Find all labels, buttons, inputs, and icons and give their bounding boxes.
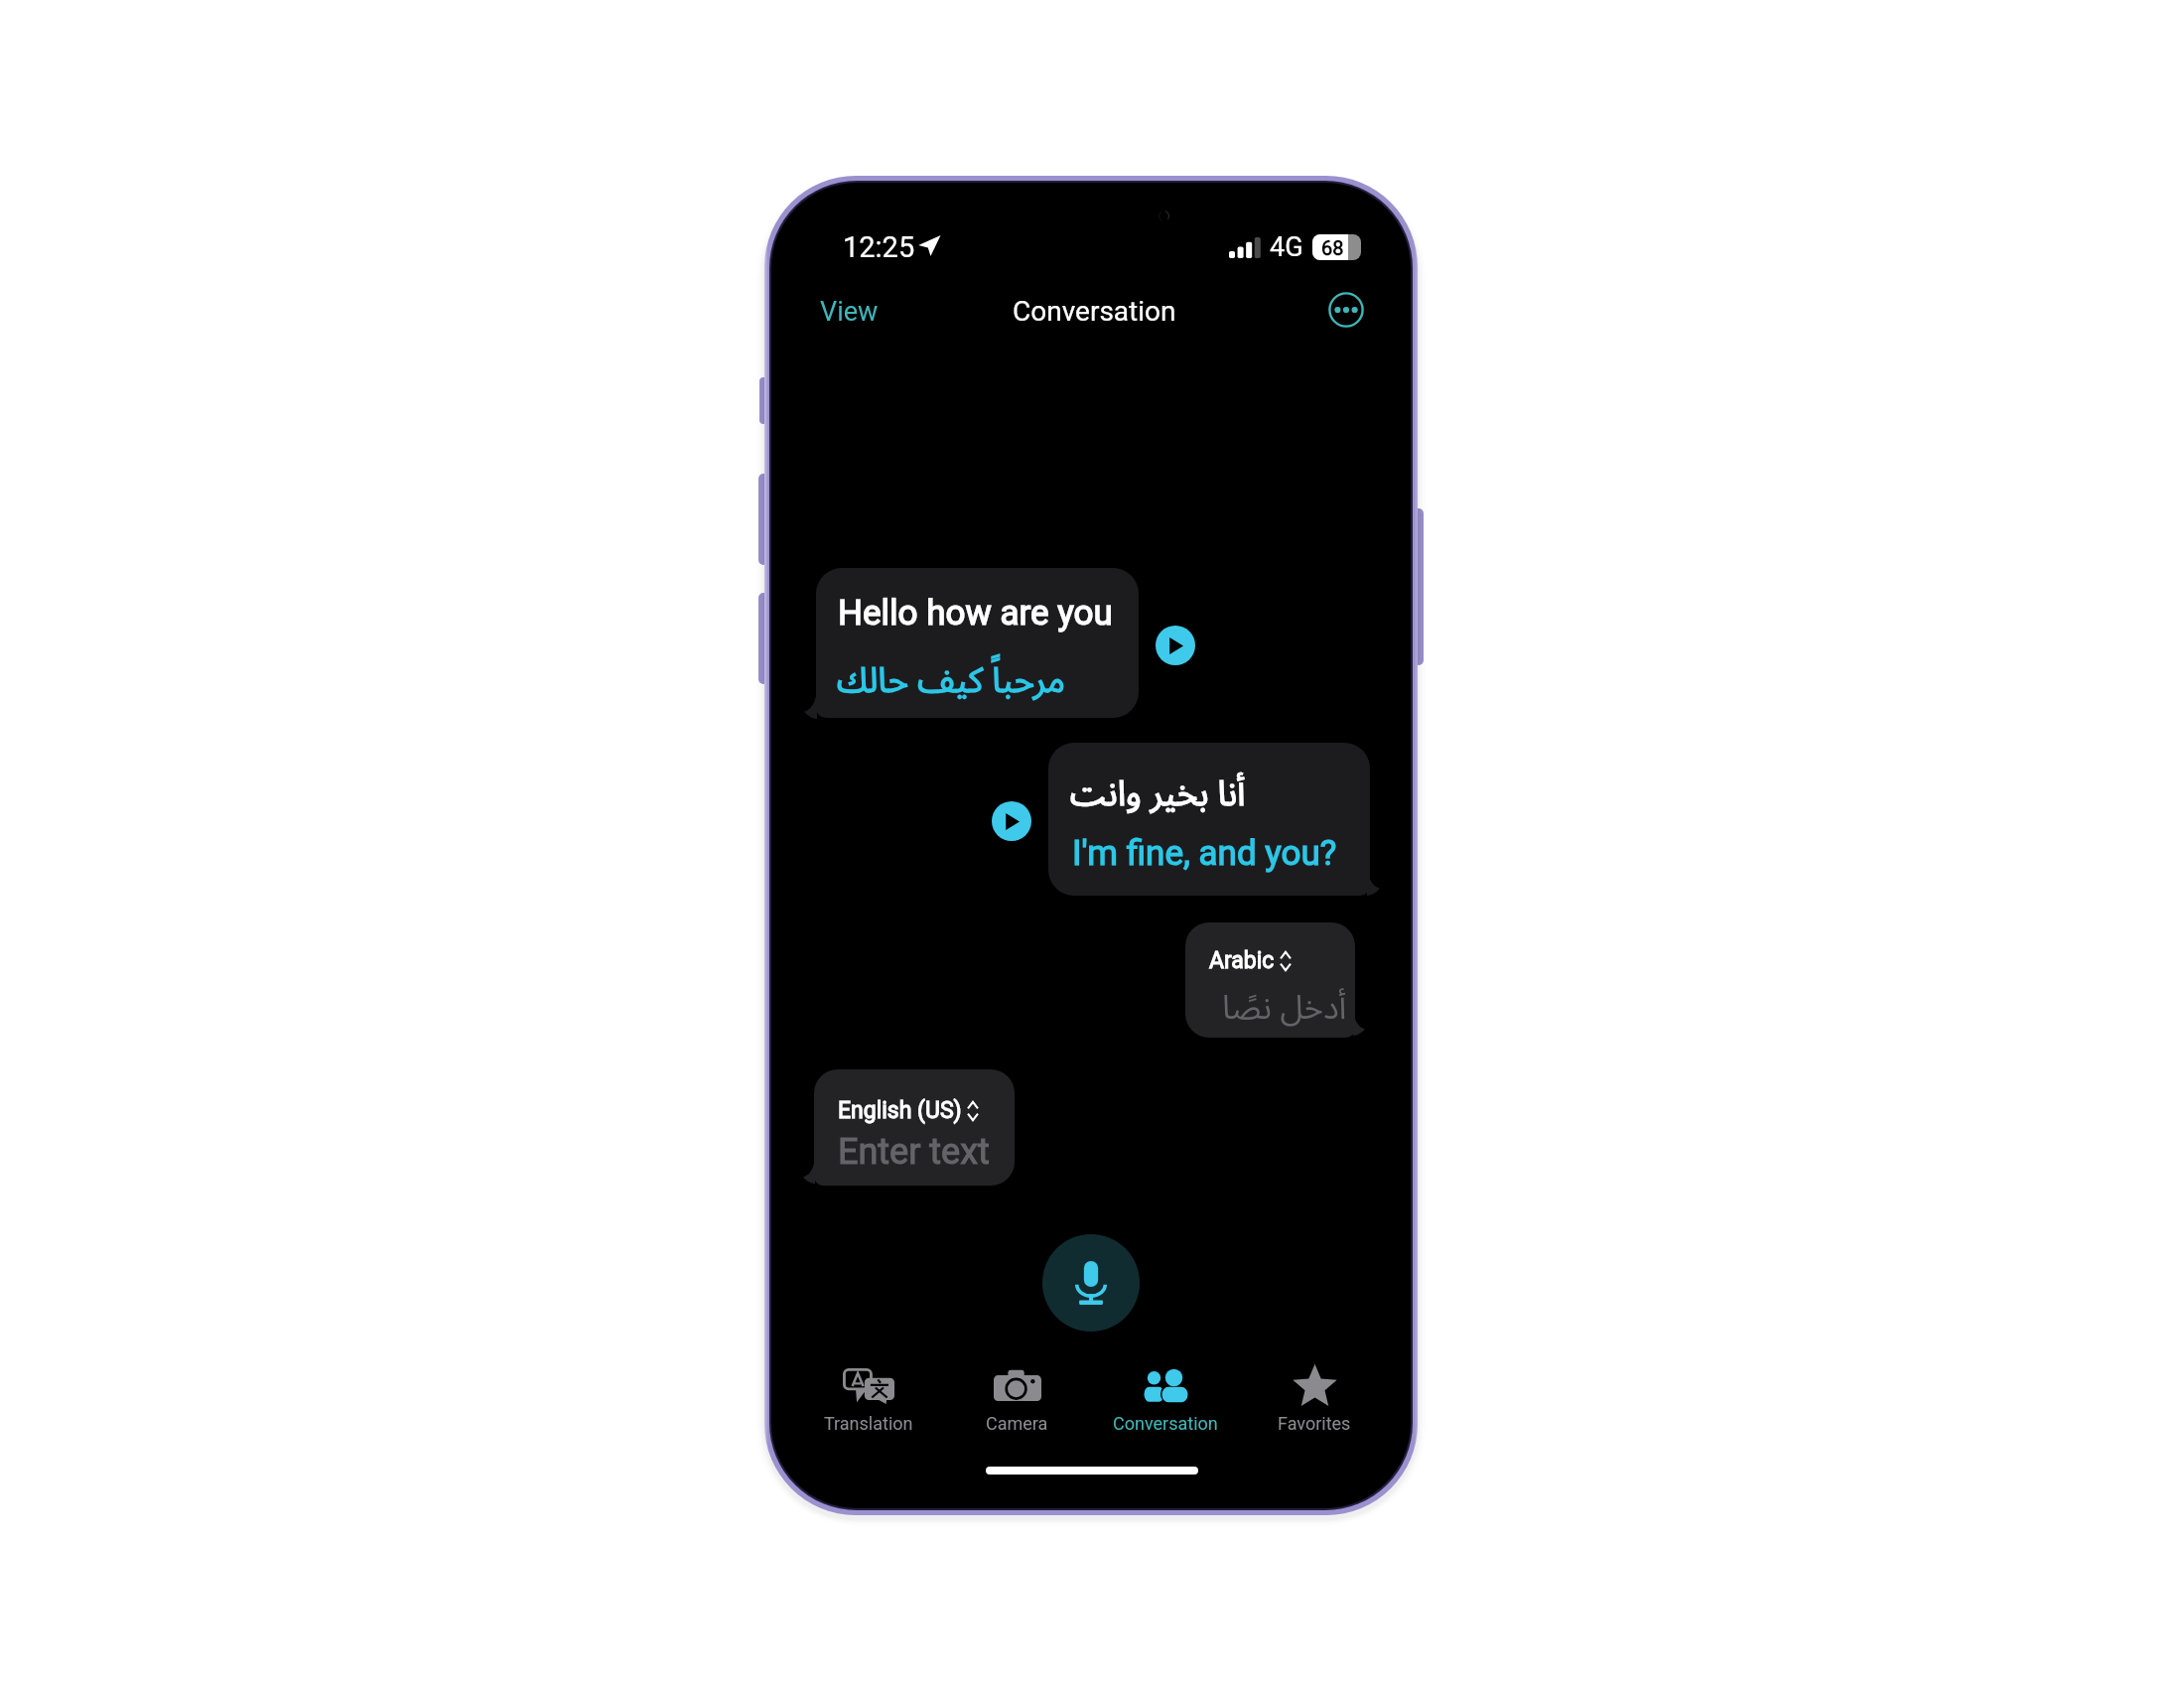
button[interactable]: Hello how are you [816, 568, 1139, 718]
staticText: أدخل نصًا [1222, 974, 1347, 1038]
button[interactable]: Camera [943, 1360, 1090, 1440]
staticText: Favorites [1278, 1413, 1351, 1434]
button[interactable]: Play translation [992, 801, 1031, 841]
staticText: Conversation [1113, 1413, 1218, 1434]
staticText: Arabic [1209, 947, 1275, 974]
button[interactable]: Favorites [1241, 1360, 1388, 1440]
staticText: Enter text [838, 1131, 990, 1173]
button[interactable]: Record [1042, 1234, 1140, 1332]
button[interactable]: English (US) [814, 1069, 1015, 1186]
button[interactable]: View [806, 290, 892, 334]
button[interactable]: Translation [795, 1360, 942, 1440]
button[interactable]: Conversation [1092, 1360, 1239, 1440]
button[interactable]: More options [1328, 292, 1364, 328]
staticText: Translation [824, 1413, 913, 1434]
button[interactable]: Play translation [1156, 626, 1195, 665]
staticText: 68 [1321, 236, 1344, 259]
staticText: Conversation [1013, 295, 1176, 328]
staticText: I'm fine, and you? [1072, 833, 1337, 874]
staticText: 12:25 [843, 230, 915, 264]
staticText: Camera [986, 1413, 1048, 1434]
button[interactable]: أنا بخير وانت [1048, 743, 1370, 896]
staticText: Hello how are you [838, 593, 1113, 633]
staticText: مرحباً كيف حالك [837, 644, 1065, 718]
staticText: أنا بخير وانت [1070, 758, 1246, 831]
staticText: 4G [1270, 231, 1303, 263]
button[interactable]: Arabic [1185, 922, 1355, 1038]
staticText: View [820, 296, 879, 328]
staticText: English (US) [838, 1097, 962, 1124]
